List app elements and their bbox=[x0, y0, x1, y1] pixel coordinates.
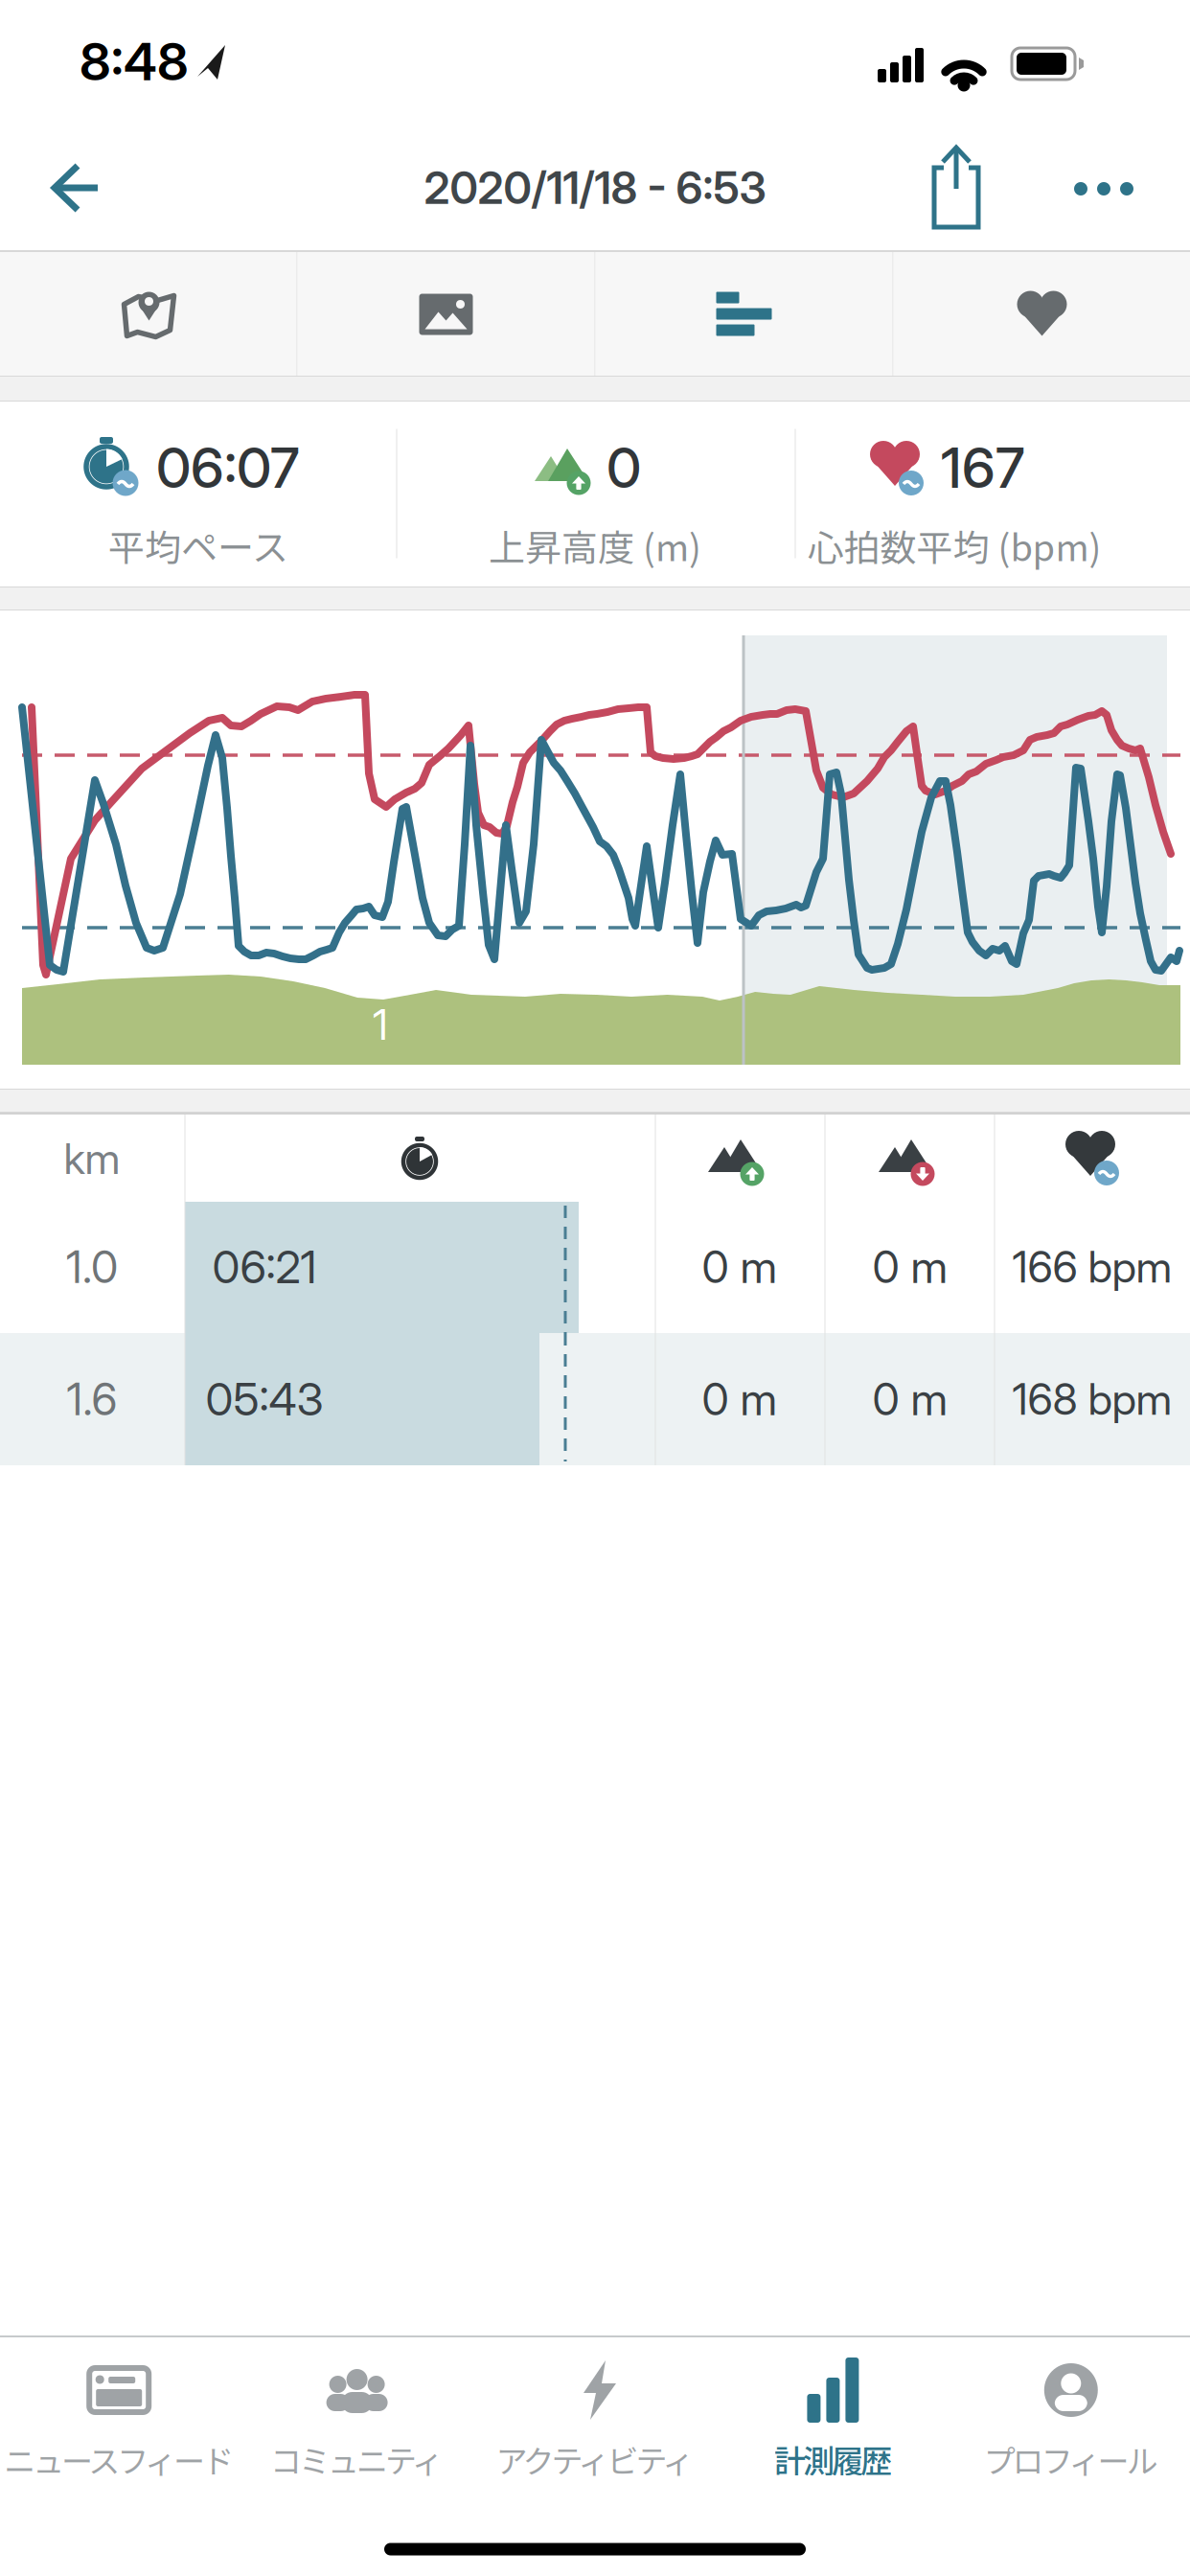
staticText: 167 bbox=[941, 434, 1025, 501]
staticText: 1.6 bbox=[67, 1373, 117, 1426]
button[interactable]: More bbox=[1067, 175, 1140, 202]
staticText: 1 bbox=[373, 999, 388, 1050]
button[interactable]: Back bbox=[11, 126, 116, 251]
button[interactable]: コミュニティ bbox=[238, 2337, 476, 2576]
staticText: 166 bpm bbox=[1012, 1241, 1172, 1293]
staticText: 上昇高度 (m) bbox=[489, 519, 701, 572]
staticText: 0 bbox=[606, 434, 641, 501]
staticText: ニュースフィード bbox=[4, 2436, 234, 2482]
button[interactable]: Photos bbox=[297, 252, 595, 376]
button[interactable]: Share bbox=[923, 141, 990, 235]
staticText: 計測履歴 bbox=[774, 2436, 892, 2482]
staticText: 8:48 bbox=[80, 30, 189, 93]
staticText: 06:07 bbox=[156, 434, 300, 501]
staticText: km bbox=[64, 1133, 120, 1184]
button[interactable]: 計測履歴 bbox=[714, 2337, 952, 2576]
staticText: 168 bpm bbox=[1012, 1373, 1172, 1425]
button[interactable]: ニュースフィード bbox=[0, 2337, 238, 2576]
staticText: プロフィール bbox=[984, 2436, 1158, 2482]
button[interactable]: Map bbox=[0, 252, 297, 376]
button[interactable]: プロフィール bbox=[952, 2337, 1190, 2576]
staticText: 平均ペース bbox=[108, 519, 288, 572]
staticText: 0 m bbox=[702, 1373, 778, 1426]
staticText: 1.0 bbox=[66, 1240, 118, 1294]
button[interactable]: アクティビティ bbox=[476, 2337, 714, 2576]
staticText: 05:43 bbox=[206, 1372, 323, 1426]
staticText: コミュニティ bbox=[270, 2436, 444, 2482]
button[interactable]: Heart rate bbox=[893, 252, 1190, 376]
staticText: 0 m bbox=[872, 1373, 948, 1426]
button[interactable]: Stats bbox=[595, 252, 892, 376]
staticText: 06:21 bbox=[212, 1240, 317, 1294]
staticText: 0 m bbox=[702, 1240, 778, 1294]
staticText: 0 m bbox=[872, 1240, 948, 1294]
staticText: 2020/11/18 - 6:53 bbox=[424, 161, 766, 215]
staticText: 心拍数平均 (bpm) bbox=[807, 519, 1101, 572]
staticText: アクティビティ bbox=[496, 2436, 694, 2482]
